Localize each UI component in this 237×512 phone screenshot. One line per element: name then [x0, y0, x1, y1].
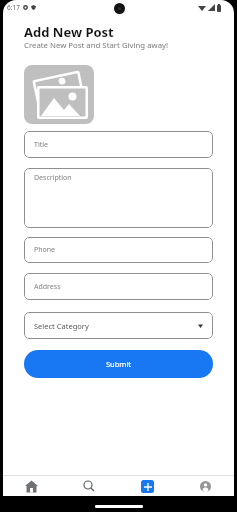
staticText: Phone [34, 245, 56, 255]
button[interactable] [60, 476, 118, 496]
button[interactable]: Submit [24, 350, 213, 378]
staticText: Add New Post [24, 23, 114, 41]
button[interactable]: Address [24, 273, 213, 300]
staticText: Select Category [34, 321, 89, 331]
staticText: Submit [106, 359, 132, 369]
staticText: Description [34, 173, 72, 183]
button[interactable]: Title [24, 131, 213, 158]
staticText: Create New Post and Start Giving away! [24, 40, 169, 51]
staticText: 6:17 [7, 3, 20, 12]
staticText: Title [34, 140, 48, 150]
button[interactable] [3, 476, 60, 496]
button[interactable] [24, 65, 94, 124]
button[interactable]: Description [24, 168, 213, 228]
button[interactable] [118, 476, 176, 496]
button[interactable] [176, 476, 234, 496]
button[interactable]: Select Category [24, 312, 213, 339]
button[interactable]: Phone [24, 237, 213, 263]
staticText: Address [34, 282, 61, 292]
